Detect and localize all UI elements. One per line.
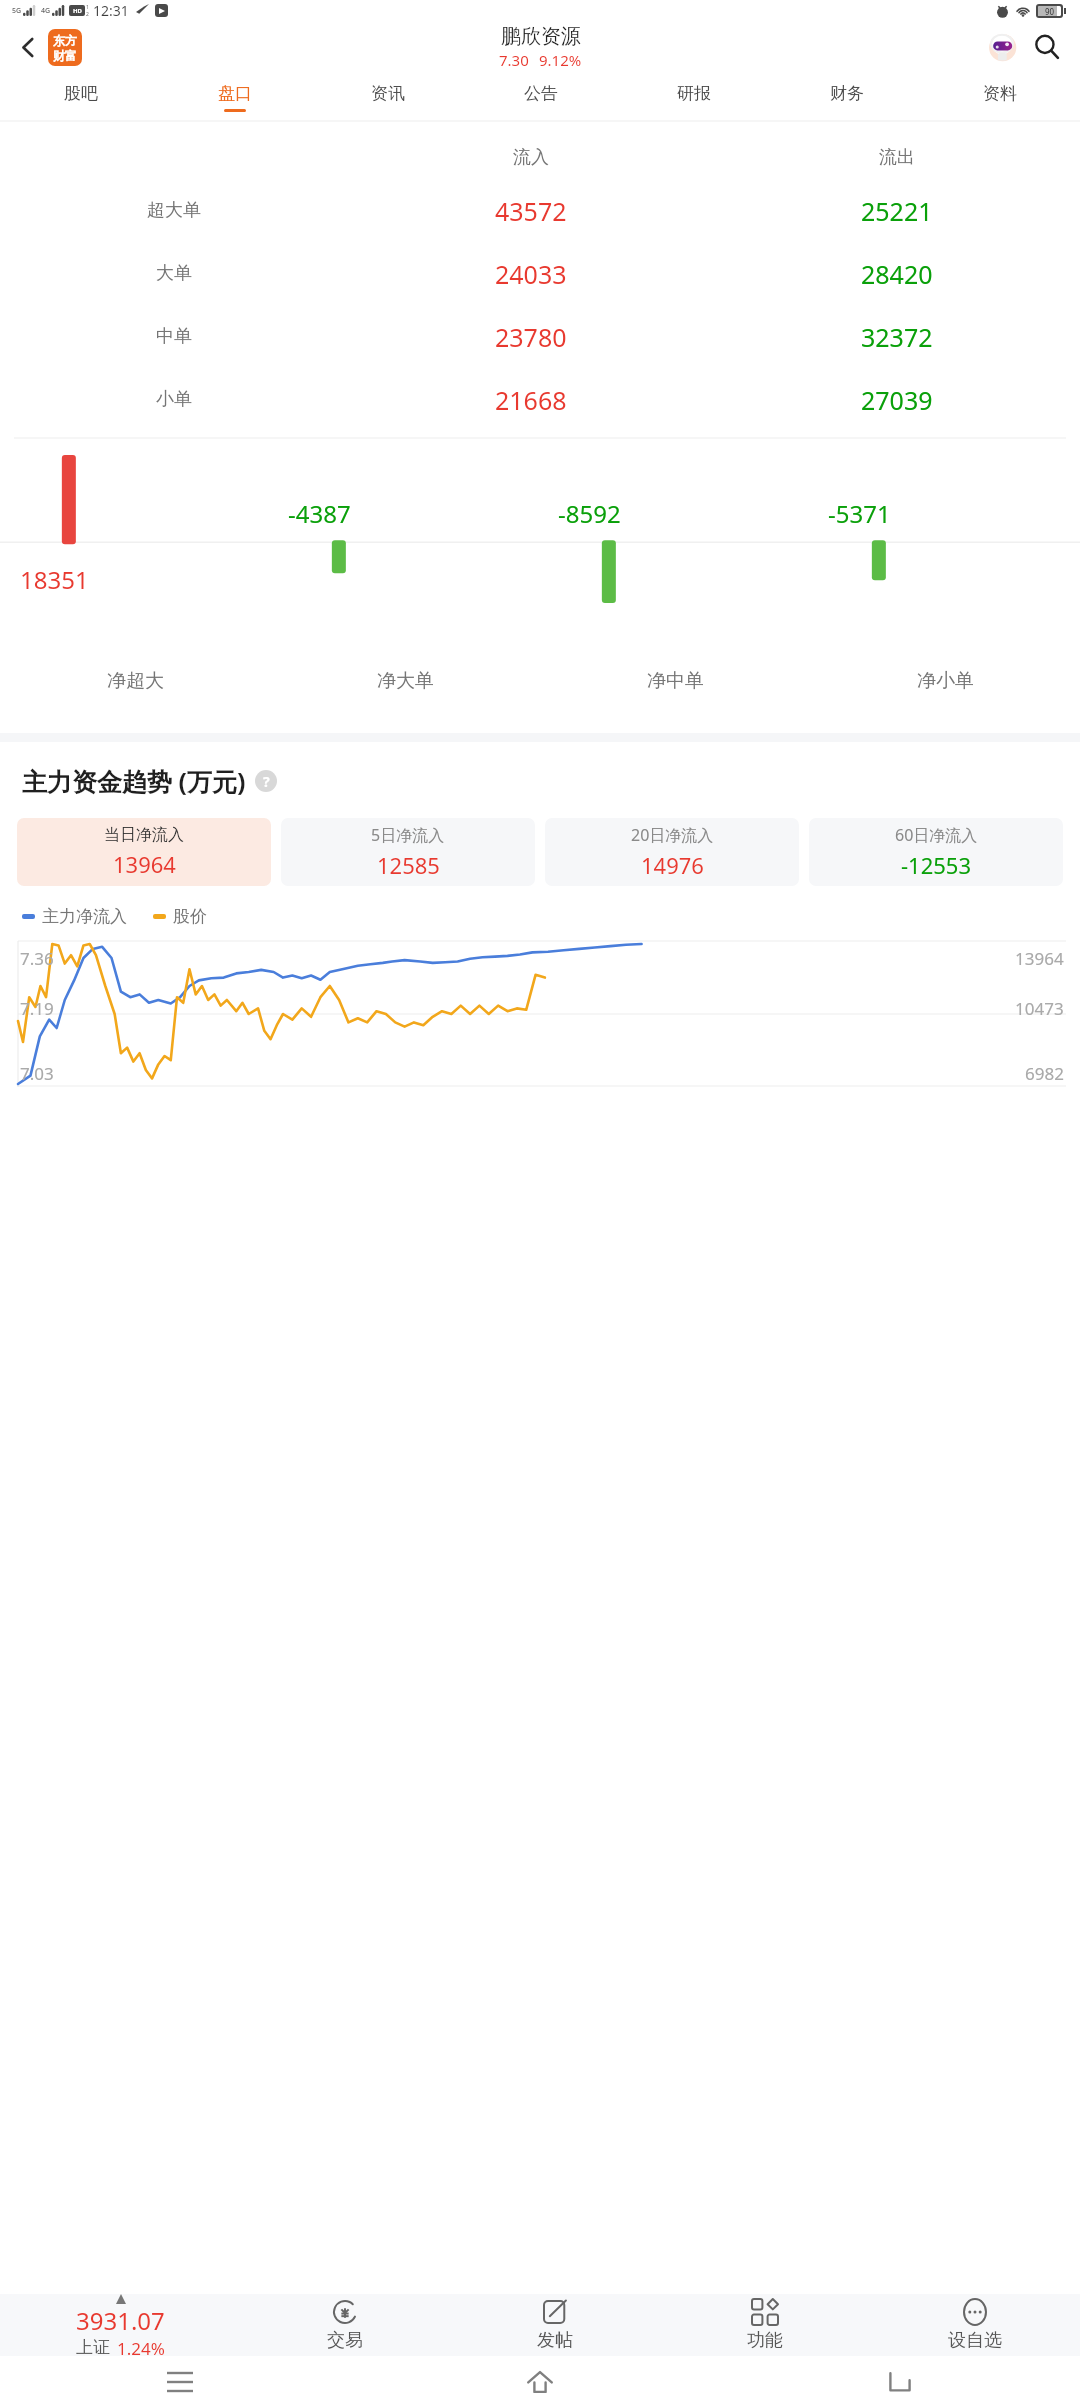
staticText: 交易 <box>327 2329 363 2352</box>
staticText: 5G <box>12 6 22 16</box>
staticText: 32372 <box>861 320 933 354</box>
staticText: 1.24% <box>117 2337 165 2356</box>
staticText: 小单 <box>156 388 192 411</box>
staticText: 14976 <box>641 850 704 880</box>
staticText: 7.30 <box>499 50 529 70</box>
staticText: 23780 <box>495 320 567 354</box>
button[interactable]: 小单 <box>0 368 1080 431</box>
staticText: 3931.07 <box>76 2304 165 2337</box>
staticText: 流出 <box>879 146 915 169</box>
staticText: 中单 <box>156 325 192 348</box>
staticText: ? <box>263 772 270 791</box>
staticText: 超大单 <box>147 199 201 222</box>
staticText: 7.36 <box>20 947 54 970</box>
staticText: 净超大 <box>107 669 164 693</box>
button[interactable]: Home <box>360 2356 720 2408</box>
button[interactable]: 交易 <box>240 2294 450 2356</box>
button[interactable]: 盘口 <box>158 73 311 121</box>
button[interactable]: 设自选 <box>870 2294 1080 2356</box>
button[interactable]: 当日净流入 <box>17 818 271 886</box>
staticText: 财富 <box>53 48 77 63</box>
staticText: 60日净流入 <box>895 824 978 846</box>
staticText: 功能 <box>747 2329 783 2352</box>
staticText: 当日净流入 <box>104 825 184 845</box>
staticText: 6982 <box>1025 1062 1064 1085</box>
staticText: 东方 <box>53 33 77 48</box>
staticText: 股价 <box>173 906 207 927</box>
button[interactable]: Recents <box>0 2356 360 2408</box>
staticText: 12:31 <box>93 1 129 20</box>
button[interactable]: 中单 <box>0 305 1080 368</box>
button[interactable]: 财务 <box>770 73 923 121</box>
button[interactable]: 资讯 <box>311 73 464 121</box>
staticText: 流入 <box>513 146 549 169</box>
staticText: 28420 <box>861 257 933 291</box>
button[interactable]: 超大单 <box>0 179 1080 242</box>
button[interactable]: 说明 <box>255 770 277 792</box>
staticText: -12553 <box>901 850 972 880</box>
button[interactable]: 大单 <box>0 242 1080 305</box>
staticText: 上证 <box>76 2337 110 2356</box>
staticText: 24033 <box>495 257 567 291</box>
staticText: 5日净流入 <box>371 824 445 846</box>
staticText: 25221 <box>861 194 933 228</box>
button[interactable]: Back <box>720 2356 1080 2408</box>
staticText: 股吧 <box>64 83 98 104</box>
staticText: 盘口 <box>218 83 252 104</box>
staticText: 9.12% <box>539 50 582 70</box>
button[interactable]: 研报 <box>617 73 770 121</box>
staticText: 大单 <box>156 262 192 285</box>
staticText: 主力净流入 <box>42 906 127 927</box>
staticText: -5371 <box>828 497 891 530</box>
staticText: -4387 <box>288 497 351 530</box>
button[interactable]: Back <box>8 27 48 67</box>
button[interactable]: AI 助手 <box>980 25 1024 69</box>
button[interactable]: 资料 <box>923 73 1076 121</box>
staticText: 公告 <box>524 83 558 104</box>
button[interactable]: 公告 <box>464 73 617 121</box>
staticText: 20日净流入 <box>631 824 714 846</box>
button[interactable]: 功能 <box>660 2294 870 2356</box>
staticText: 10473 <box>1015 997 1064 1020</box>
staticText: 27039 <box>861 383 933 417</box>
staticText: 净小单 <box>917 669 974 693</box>
staticText: HD <box>73 7 82 15</box>
staticText: 90 <box>1045 6 1055 16</box>
staticText: 净中单 <box>647 669 704 693</box>
staticText: 主力资金趋势 (万元) <box>22 764 246 798</box>
staticText: 资讯 <box>371 83 405 104</box>
button[interactable]: 60日净流入 <box>809 818 1063 886</box>
staticText: 7.03 <box>20 1062 54 1085</box>
staticText: 发帖 <box>537 2329 573 2352</box>
staticText: 1 <box>86 4 89 11</box>
staticText: 设自选 <box>948 2329 1002 2352</box>
button[interactable]: 发帖 <box>450 2294 660 2356</box>
button[interactable]: 20日净流入 <box>545 818 799 886</box>
staticText: 18351 <box>20 563 89 596</box>
staticText: 2 <box>86 11 89 18</box>
staticText: 13964 <box>1015 947 1064 970</box>
button[interactable]: 东方财富 <box>48 29 82 66</box>
staticText: -8592 <box>558 497 621 530</box>
staticText: 43572 <box>495 194 567 228</box>
staticText: 研报 <box>677 83 711 104</box>
staticText: 财务 <box>830 83 864 104</box>
button[interactable]: 3931.07 <box>0 2294 240 2356</box>
button[interactable]: 5日净流入 <box>281 818 535 886</box>
staticText: 资料 <box>983 83 1017 104</box>
button[interactable]: Search <box>1024 24 1070 70</box>
staticText: 13964 <box>113 849 176 879</box>
staticText: 鹏欣资源 <box>501 24 581 49</box>
staticText: 21668 <box>495 383 567 417</box>
button[interactable]: 股吧 <box>4 73 158 121</box>
staticText: 4G <box>41 6 51 16</box>
staticText: 净大单 <box>377 669 434 693</box>
staticText: 7.19 <box>20 997 54 1020</box>
staticText: 12585 <box>377 850 440 880</box>
